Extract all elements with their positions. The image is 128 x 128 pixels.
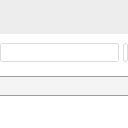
button[interactable]: Search <box>123 43 128 62</box>
button[interactable]: Search field <box>0 43 119 62</box>
